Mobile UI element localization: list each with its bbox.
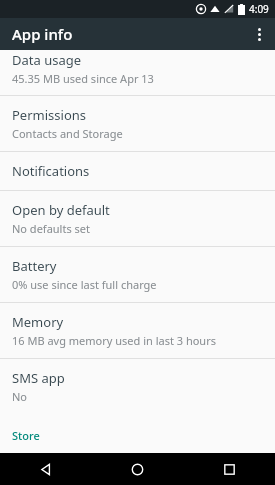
staticText: Data usage <box>12 51 82 69</box>
button[interactable]: Memory <box>0 303 275 358</box>
staticText: Open by default <box>12 201 110 219</box>
button[interactable]: Data usage <box>0 50 275 95</box>
staticText: 16 MB avg memory used in last 3 hours <box>12 333 216 348</box>
staticText: Notifications <box>12 162 90 180</box>
staticText: Store <box>12 428 40 443</box>
staticText: Permissions <box>12 106 87 124</box>
staticText: Contacts and Storage <box>12 126 123 141</box>
staticText: App info <box>12 24 73 44</box>
staticText: 45.35 MB used since Apr 13 <box>12 71 154 86</box>
staticText: 0% use since last full charge <box>12 277 157 292</box>
button[interactable]: More options <box>243 18 275 50</box>
staticText: SMS app <box>12 369 65 387</box>
button[interactable]: Recent apps <box>183 453 275 485</box>
button[interactable]: Notifications <box>0 152 275 190</box>
button[interactable]: Back <box>0 453 91 485</box>
staticText: No defaults set <box>12 221 90 236</box>
button[interactable]: Battery <box>0 247 275 302</box>
staticText: 4:09 <box>249 2 269 16</box>
staticText: Battery <box>12 257 57 275</box>
button[interactable]: Permissions <box>0 96 275 151</box>
staticText: No <box>12 389 28 404</box>
staticText: Memory <box>12 313 64 331</box>
button[interactable]: Open by default <box>0 191 275 246</box>
button[interactable]: SMS app <box>0 359 275 414</box>
button[interactable]: Home <box>91 453 183 485</box>
